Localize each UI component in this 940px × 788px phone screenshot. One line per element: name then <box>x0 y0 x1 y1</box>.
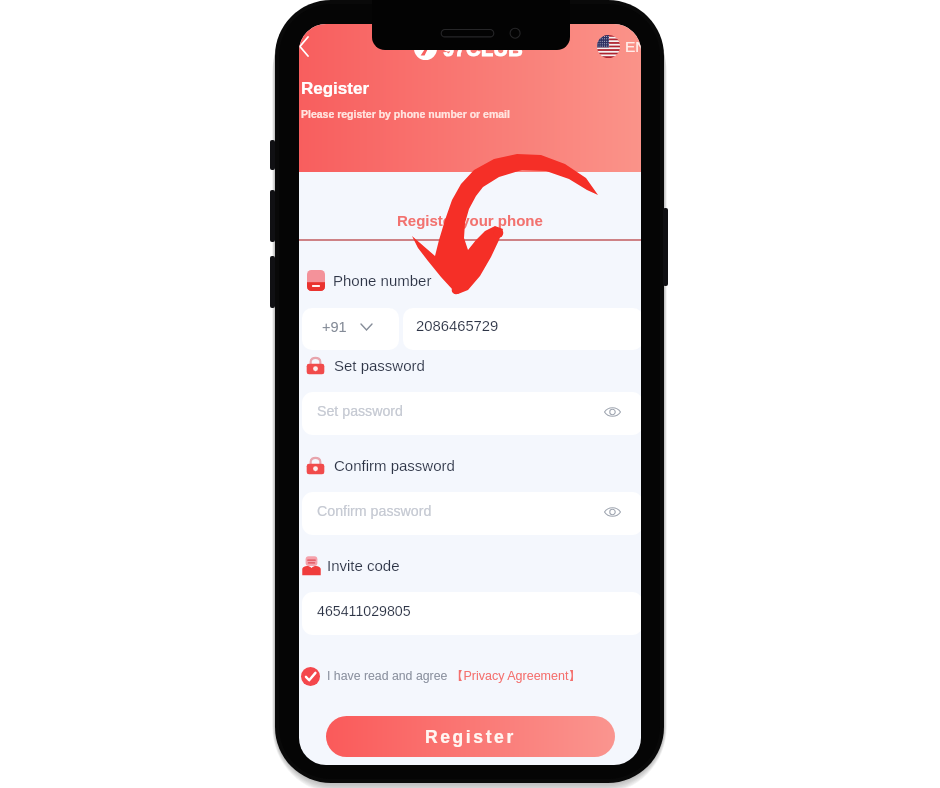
staticText: Phone number <box>333 272 432 289</box>
staticText: Set password <box>317 403 403 419</box>
staticText: 2086465729 <box>416 318 499 335</box>
staticText: Please register by phone number or email <box>301 108 510 120</box>
button[interactable]: +91 <box>302 308 399 350</box>
staticText: I have read and agree <box>327 669 448 683</box>
staticText: Set password <box>334 357 425 374</box>
button[interactable]: 2086465729 <box>403 308 641 350</box>
staticText: Register <box>425 727 516 747</box>
button[interactable]: EN <box>597 35 641 58</box>
button[interactable]: Register <box>326 716 615 757</box>
button[interactable]: Show password <box>599 499 625 525</box>
staticText: Confirm password <box>334 457 455 474</box>
button[interactable]: Confirm password <box>302 492 641 535</box>
staticText: Register your phone <box>397 212 543 229</box>
staticText: +91 <box>322 319 347 335</box>
staticText: Register <box>301 79 370 98</box>
button[interactable]: Register your phone <box>299 209 641 231</box>
staticText: 【Privacy Agreement】 <box>451 668 581 684</box>
staticText: EN <box>625 38 641 55</box>
button[interactable]: Show password <box>599 399 625 425</box>
button[interactable]: I have read and agree <box>301 665 581 687</box>
staticText: Confirm password <box>317 503 432 519</box>
button[interactable]: 465411029805 <box>302 592 641 635</box>
staticText: 465411029805 <box>317 603 411 619</box>
button[interactable]: Back <box>299 30 318 62</box>
button[interactable]: Set password <box>302 392 641 435</box>
staticText: Invite code <box>327 557 400 574</box>
staticText: 97CLUB <box>443 38 524 60</box>
